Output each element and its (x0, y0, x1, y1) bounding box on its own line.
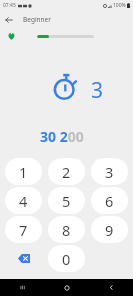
staticText: 0 (62, 249, 71, 269)
staticText: 8 (62, 220, 71, 240)
staticText: 3 (91, 76, 104, 105)
staticText: 07:45 (3, 2, 16, 9)
staticText: Beginner (23, 15, 51, 24)
staticText: 5 (62, 191, 71, 211)
staticText: 100% (113, 2, 126, 9)
button[interactable]: 1 (5, 158, 42, 185)
staticText: 1 (19, 162, 28, 182)
button[interactable]: Back (101, 279, 121, 296)
button[interactable]: 2 (48, 158, 85, 185)
staticText: 30 200 (40, 127, 84, 146)
button[interactable]: Home (57, 279, 77, 296)
button[interactable]: Recent apps (12, 279, 32, 296)
staticText: 7 (19, 220, 28, 240)
staticText: 6 (105, 191, 114, 211)
button[interactable]: Backspace (5, 245, 42, 272)
staticText: 3 (105, 162, 114, 182)
button[interactable]: 0 (48, 245, 85, 272)
button[interactable]: 8 (48, 216, 85, 243)
staticText: 9 (105, 220, 114, 240)
button[interactable]: 9 (91, 216, 128, 243)
staticText: 4 (19, 191, 28, 211)
button[interactable]: 3 (91, 158, 128, 185)
button[interactable]: Back (0, 11, 17, 28)
button[interactable]: 7 (5, 216, 42, 243)
button[interactable]: 5 (48, 187, 85, 214)
button[interactable]: 6 (91, 187, 128, 214)
button[interactable]: 4 (5, 187, 42, 214)
staticText: 2 (62, 162, 71, 182)
